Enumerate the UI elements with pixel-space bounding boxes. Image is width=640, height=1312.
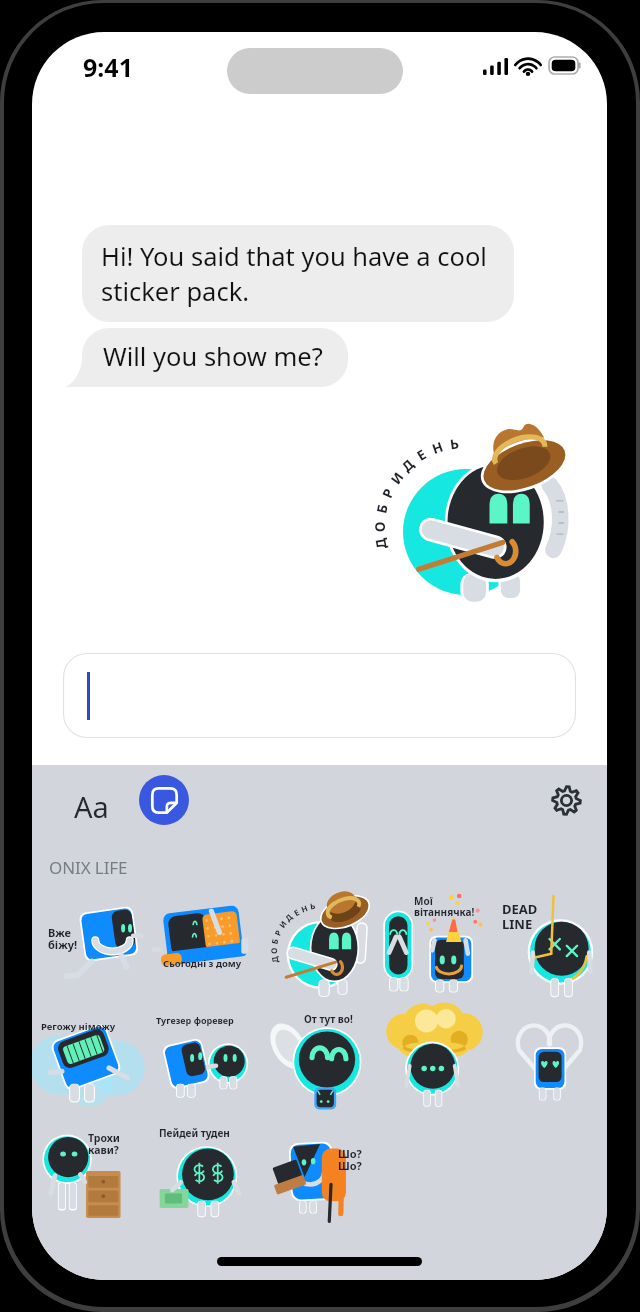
staticText: Мої вітаннячка! <box>414 894 475 919</box>
button[interactable]: Sticker 12 <box>147 1115 262 1227</box>
button[interactable]: Stickers <box>139 775 189 825</box>
staticText: Н <box>430 437 445 456</box>
staticText: И <box>387 468 406 487</box>
staticText: Ь <box>309 900 317 911</box>
staticText: Д <box>268 955 280 964</box>
staticText: Пейдей туден <box>159 1126 230 1140</box>
button[interactable]: Sticker 7 <box>147 1003 262 1115</box>
button[interactable]: Sticker 2 <box>147 891 262 1003</box>
button[interactable] <box>63 653 576 738</box>
button[interactable]: Sticker 9 <box>377 1003 492 1115</box>
staticText: От тут во! <box>304 1012 353 1026</box>
staticText: Регожу німожу <box>41 1020 116 1033</box>
staticText: Шо? Шо? <box>338 1146 362 1173</box>
staticText: Сьогодні з дому <box>163 957 242 970</box>
staticText: ONIX LIFE <box>49 856 128 879</box>
staticText: И <box>276 918 289 930</box>
staticText: Д <box>371 537 389 550</box>
staticText: Е <box>292 906 302 918</box>
staticText: Н <box>299 902 310 915</box>
button[interactable]: Settings <box>543 777 589 823</box>
staticText: Р <box>272 928 284 937</box>
button[interactable]: Hi! You said that you have a cool sticke… <box>82 225 514 322</box>
button[interactable]: Sticker 11 <box>32 1115 147 1227</box>
button[interactable]: Sticker 8 <box>262 1003 377 1115</box>
staticText: Д <box>282 911 295 923</box>
staticText: Д <box>398 455 417 474</box>
button[interactable]: Sticker 1 <box>32 891 147 1003</box>
staticText: DEAD LINE <box>502 900 538 933</box>
button[interactable]: Sticker 6 <box>32 1003 147 1115</box>
staticText: Б <box>268 937 281 945</box>
staticText: Hi! You said that you have a cool sticke… <box>101 239 487 308</box>
staticText: Р <box>378 485 396 500</box>
staticText: Will you show me? <box>103 339 323 374</box>
staticText: Б <box>372 502 390 515</box>
button[interactable]: Sticker 5 <box>492 891 607 1003</box>
staticText: Вже біжу! <box>48 925 78 952</box>
button[interactable]: Sticker 4 <box>377 891 492 1003</box>
staticText: Ь <box>449 434 460 451</box>
staticText: Е <box>413 445 429 463</box>
staticText: О <box>268 947 279 954</box>
button[interactable]: Aa <box>64 781 119 832</box>
staticText: О <box>371 521 387 532</box>
staticText: Тугезер форевер <box>156 1014 234 1026</box>
button[interactable]: Sticker 10 <box>492 1003 607 1115</box>
staticText: 9:41 <box>83 50 133 84</box>
staticText: Aa <box>74 787 109 826</box>
button[interactable]: Sticker 13 <box>262 1115 377 1227</box>
staticText: Трохи кави? <box>88 1131 120 1158</box>
button[interactable]: Sticker 3 <box>262 891 377 1003</box>
